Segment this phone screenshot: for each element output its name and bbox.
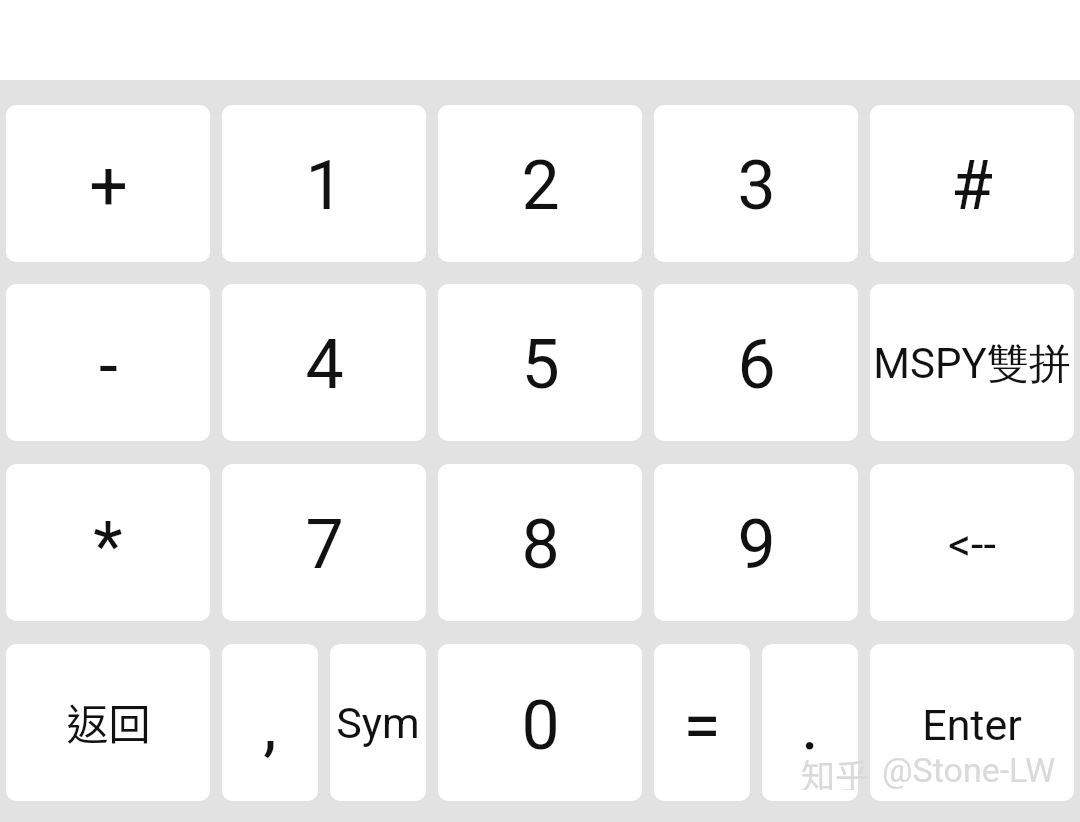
- staticText: 1: [305, 146, 344, 226]
- staticText: ,: [263, 685, 277, 765]
- button[interactable]: Enter: [870, 644, 1074, 801]
- staticText: @Stone-LW: [882, 750, 1056, 790]
- button[interactable]: 9: [654, 464, 858, 621]
- button[interactable]: 6: [654, 284, 858, 441]
- staticText: 6: [737, 325, 776, 405]
- staticText: 5: [521, 325, 560, 405]
- staticText: #: [951, 146, 993, 226]
- button[interactable]: Minus: [6, 284, 210, 441]
- staticText: .: [801, 686, 819, 766]
- staticText: =: [683, 686, 721, 766]
- button[interactable]: Equals: [654, 644, 750, 801]
- staticText: 8: [521, 505, 560, 585]
- staticText: 返回: [66, 691, 151, 752]
- staticText: 3: [737, 146, 776, 226]
- button[interactable]: 5: [438, 284, 642, 441]
- button[interactable]: Comma: [222, 644, 318, 801]
- staticText: 知乎: [801, 750, 869, 790]
- staticText: 2: [521, 146, 560, 226]
- staticText: 7: [305, 505, 344, 585]
- staticText: *: [93, 507, 123, 587]
- staticText: 4: [305, 325, 344, 405]
- button[interactable]: 返回 Back: [6, 644, 210, 801]
- button[interactable]: MSPY雙拼 input method: [870, 284, 1074, 441]
- staticText: Enter: [922, 700, 1022, 750]
- button[interactable]: Plus: [6, 105, 210, 262]
- button[interactable]: 1: [222, 105, 426, 262]
- button[interactable]: Symbols: [330, 644, 426, 801]
- button[interactable]: 7: [222, 464, 426, 621]
- staticText: 0: [521, 686, 560, 766]
- button[interactable]: 3: [654, 105, 858, 262]
- staticText: <--: [948, 518, 996, 571]
- staticText: +: [89, 146, 128, 226]
- button[interactable]: Backspace: [870, 464, 1074, 621]
- button[interactable]: 4: [222, 284, 426, 441]
- button[interactable]: 8: [438, 464, 642, 621]
- button[interactable]: 0: [438, 644, 642, 801]
- staticText: -: [99, 326, 118, 406]
- button[interactable]: 2: [438, 105, 642, 262]
- button[interactable]: Hash: [870, 105, 1074, 262]
- staticText: MSPY雙拼: [873, 338, 1071, 391]
- button[interactable]: Period: [762, 644, 858, 801]
- button[interactable]: Asterisk: [6, 464, 210, 621]
- staticText: Sym: [336, 698, 420, 748]
- staticText: 9: [737, 505, 776, 585]
